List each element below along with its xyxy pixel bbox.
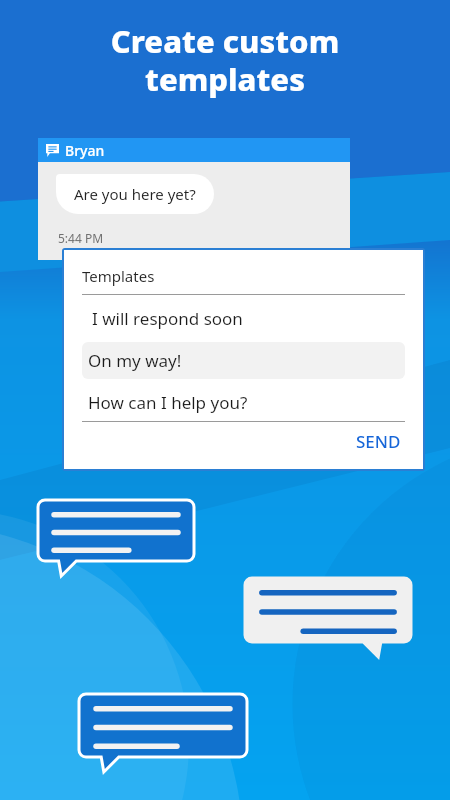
staticText: Create custom templates — [24, 20, 426, 100]
staticText: Templates — [82, 266, 155, 286]
button[interactable]: Message bubble — [79, 694, 247, 773]
button[interactable]: Message bubble — [245, 578, 411, 658]
staticText: Bryan — [65, 141, 105, 160]
button[interactable]: Bryan — [38, 138, 350, 260]
staticText: SEND — [356, 430, 401, 453]
staticText: I will respond soon — [92, 307, 243, 330]
staticText: How can I help you? — [88, 391, 248, 414]
button[interactable]: SEND — [352, 422, 405, 461]
staticText: On my way! — [88, 349, 182, 372]
button[interactable]: On my way! — [82, 342, 405, 379]
button[interactable]: How can I help you? — [82, 384, 405, 421]
button[interactable]: I will respond soon — [82, 300, 405, 337]
button[interactable]: Message bubble — [38, 500, 194, 577]
staticText: 5:44 PM — [58, 230, 104, 246]
staticText: Are you here yet? — [74, 184, 196, 204]
